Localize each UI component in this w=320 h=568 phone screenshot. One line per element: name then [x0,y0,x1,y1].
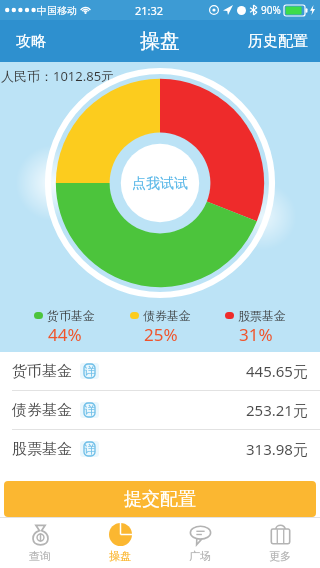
staticText: 攻略 [16,32,46,51]
staticText: 313.98元 [246,439,308,459]
staticText: 44% [48,323,82,346]
staticText: 货币基金 [47,308,95,323]
staticText: 债券基金 [143,308,191,323]
button[interactable]: 操盘 [80,518,160,568]
staticText: 操盘 [140,29,180,54]
staticText: 广场 [189,549,211,563]
button[interactable]: 攻略 [0,24,62,59]
staticText: 90% [261,3,281,17]
staticText: 股票基金 [238,308,286,323]
staticText: 股票基金 [12,440,72,459]
staticText: 点我试试 [132,175,188,193]
staticText: 人民币：1012.85元 [1,67,115,85]
button[interactable]: 货币基金 [0,352,320,390]
staticText: 详 [84,364,95,378]
staticText: 445.65元 [246,361,308,381]
staticText: 详 [84,403,95,417]
button[interactable]: 债券基金 [0,391,320,429]
staticText: 中国移动 [37,4,77,17]
staticText: 查询 [29,549,51,563]
staticText: 更多 [269,549,291,563]
staticText: 253.21元 [246,400,308,420]
button[interactable]: 更多 [240,518,320,568]
button[interactable]: 点我试试 [48,71,272,295]
button[interactable]: 提交配置 [4,481,316,517]
button[interactable]: 详 [80,363,99,379]
button[interactable]: 广场 [160,518,240,568]
button[interactable]: 历史配置 [236,24,320,59]
button[interactable]: 股票基金 [0,430,320,468]
staticText: 详 [84,442,95,456]
staticText: 25% [144,323,178,346]
staticText: 债券基金 [12,401,72,420]
staticText: 操盘 [109,549,131,563]
staticText: 历史配置 [248,32,308,51]
button[interactable]: 查询 [0,518,80,568]
button[interactable]: 详 [80,441,99,457]
button[interactable]: 详 [80,402,99,418]
staticText: 21:32 [135,3,164,18]
staticText: 提交配置 [124,488,196,511]
staticText: 31% [239,323,273,346]
staticText: 货币基金 [12,362,72,381]
